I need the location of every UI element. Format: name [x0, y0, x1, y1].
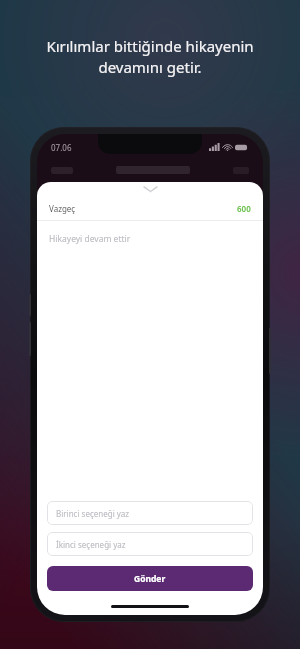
- button[interactable]: Birinci seçeneği yaz: [47, 501, 253, 525]
- staticText: Birinci seçeneği yaz: [56, 508, 130, 519]
- staticText: Vazgeç: [49, 203, 76, 214]
- button[interactable]: Vazgeç: [49, 203, 76, 214]
- staticText: 600: [237, 203, 251, 214]
- staticText: İkinci seçeneği yaz: [56, 539, 126, 550]
- staticText: Hikayeyi devam ettir: [49, 233, 131, 245]
- button[interactable]: İkinci seçeneği yaz: [47, 532, 253, 556]
- staticText: 07.06: [51, 142, 72, 153]
- staticText: Kırılımlar bittiğinde hikayenin devamını…: [46, 36, 254, 78]
- staticText: Gönder: [134, 573, 166, 585]
- button[interactable]: Gönder: [47, 566, 253, 591]
- button[interactable]: Kapat: [37, 182, 263, 196]
